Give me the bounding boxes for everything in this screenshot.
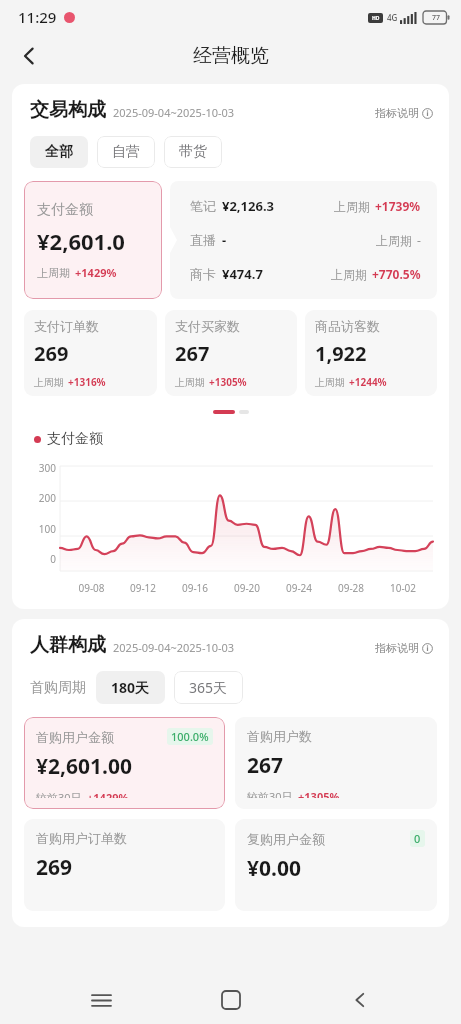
button[interactable]: 支付金额 <box>24 181 162 299</box>
staticText: 269 <box>34 340 69 367</box>
staticText: 指标说明 <box>375 641 419 655</box>
staticText: 09-12 <box>117 581 169 595</box>
staticText: 269 <box>36 853 73 882</box>
staticText: 经营概览 <box>193 44 269 68</box>
staticText: 0 <box>414 831 421 846</box>
button[interactable]: Back <box>8 35 50 77</box>
staticText: +1305% <box>209 375 247 389</box>
button[interactable]: 指标说明 <box>375 641 433 657</box>
staticText: 上周期 <box>315 376 345 389</box>
staticText: 上周期 <box>376 233 412 248</box>
staticText: 较前30日 <box>247 789 293 798</box>
staticText: +1429% <box>75 265 117 280</box>
staticText: 全部 <box>45 143 73 161</box>
staticText: 09-08 <box>66 581 117 595</box>
button[interactable]: 首购用户订单数 <box>24 819 225 911</box>
staticText: 首购用户订单数 <box>36 830 127 846</box>
staticText: 上周期 <box>175 376 205 389</box>
staticText: ¥474.7 <box>222 265 263 283</box>
button[interactable]: 商品访客数 <box>305 310 437 396</box>
staticText: ¥2,601.0 <box>37 226 125 256</box>
staticText: 180天 <box>111 678 150 697</box>
staticText: 上周期 <box>37 266 70 280</box>
button[interactable]: 365天 <box>174 671 243 704</box>
staticText: 100 <box>26 522 56 536</box>
staticText: +1429% <box>87 790 129 798</box>
button[interactable]: 支付买家数 <box>165 310 297 396</box>
staticText: 300 <box>26 461 56 475</box>
staticText: 首购周期 <box>30 679 86 697</box>
staticText: 自营 <box>112 143 140 161</box>
staticText: 上周期 <box>334 199 370 214</box>
staticText: +1739% <box>375 198 421 214</box>
staticText: ¥2,601.00 <box>36 752 132 781</box>
staticText: - <box>417 232 421 248</box>
staticText: +1305% <box>298 789 340 798</box>
staticText: 商卡 <box>190 266 216 282</box>
staticText: 首购用户数 <box>247 728 312 744</box>
staticText: 支付金额 <box>47 430 103 448</box>
staticText: 365天 <box>189 678 228 697</box>
staticText: 267 <box>175 340 210 367</box>
staticText: 交易构成 <box>30 98 106 122</box>
staticText: 77 <box>432 13 441 23</box>
staticText: 2025-09-04~2025-10-03 <box>113 105 235 120</box>
button[interactable]: 自营 <box>97 136 155 168</box>
staticText: 笔记 <box>190 198 216 214</box>
staticText: 较前30日 <box>36 790 82 798</box>
button[interactable]: 笔记 <box>170 181 437 299</box>
staticText: ¥2,126.3 <box>222 197 274 215</box>
staticText: 商品访客数 <box>315 318 380 334</box>
staticText: 指标说明 <box>375 106 419 120</box>
staticText: 支付买家数 <box>175 318 240 334</box>
staticText: 09-28 <box>325 581 377 595</box>
button[interactable]: 支付订单数 <box>24 310 157 396</box>
staticText: 267 <box>247 751 284 780</box>
staticText: ¥0.00 <box>247 854 301 883</box>
staticText: 09-20 <box>221 581 273 595</box>
staticText: 上周期 <box>331 267 367 282</box>
staticText: 11:29 <box>18 7 57 27</box>
button[interactable]: 指标说明 <box>375 106 433 122</box>
staticText: 2025-09-04~2025-10-03 <box>113 640 235 655</box>
staticText: 09-16 <box>169 581 221 595</box>
button[interactable]: Recents <box>73 976 129 1024</box>
staticText: 09-24 <box>273 581 325 595</box>
staticText: 支付订单数 <box>34 318 99 334</box>
button[interactable]: 复购用户金额 <box>235 819 437 911</box>
staticText: 100.0% <box>171 729 209 744</box>
staticText: +1316% <box>68 375 106 389</box>
staticText: 0 <box>26 552 56 566</box>
button[interactable]: 180天 <box>96 671 165 704</box>
staticText: - <box>222 231 227 249</box>
staticText: 1,922 <box>315 340 367 367</box>
staticText: +770.5% <box>372 266 421 282</box>
button[interactable]: Back <box>332 976 388 1024</box>
staticText: +1244% <box>349 375 387 389</box>
staticText: 带货 <box>179 143 207 161</box>
button[interactable]: Home <box>203 976 259 1024</box>
button[interactable]: 首购用户金额 <box>24 717 225 809</box>
staticText: 复购用户金额 <box>247 831 325 847</box>
staticText: 直播 <box>190 232 216 248</box>
staticText: 4G <box>387 12 398 23</box>
staticText: HD <box>372 15 380 22</box>
button[interactable]: 首购用户数 <box>235 717 437 809</box>
staticText: 首购用户金额 <box>36 729 114 745</box>
button[interactable]: 带货 <box>164 136 222 168</box>
staticText: 200 <box>26 491 56 505</box>
button[interactable]: 全部 <box>30 136 88 168</box>
staticText: 10-02 <box>377 581 429 595</box>
staticText: 支付金额 <box>37 201 93 219</box>
staticText: 人群构成 <box>30 633 106 657</box>
staticText: 上周期 <box>34 376 64 389</box>
